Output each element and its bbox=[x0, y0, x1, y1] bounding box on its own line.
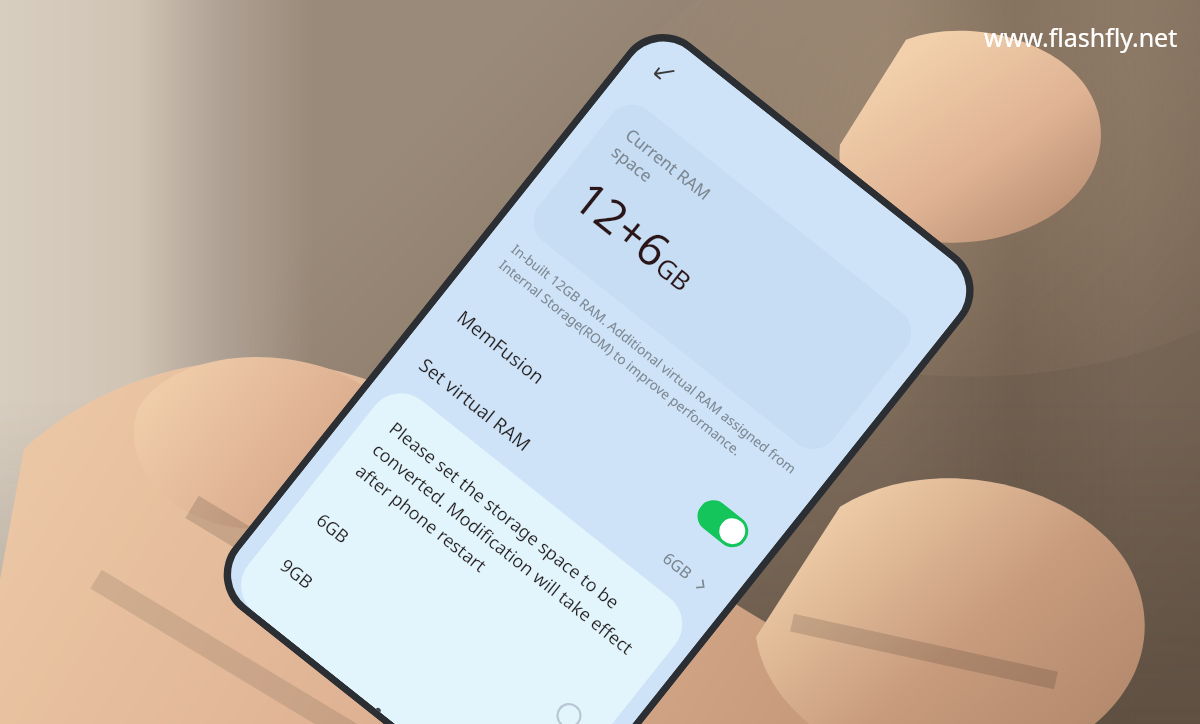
staticText: www.flashfly.net bbox=[984, 20, 1178, 54]
staticText: GB bbox=[649, 248, 699, 298]
staticText: 6GB bbox=[658, 547, 697, 584]
staticText: Current RAM space bbox=[607, 123, 716, 222]
button[interactable]: MemFusion toggle, on bbox=[691, 494, 755, 554]
button[interactable]: Back bbox=[634, 43, 695, 104]
button[interactable]: 12GB bbox=[264, 585, 525, 724]
staticText: 12+6 bbox=[562, 166, 684, 281]
staticText: Please set the storage space to be conve… bbox=[351, 416, 659, 684]
staticText: MemFusion bbox=[452, 304, 550, 390]
button[interactable]: 6GB bbox=[301, 494, 597, 724]
button[interactable]: Current RAM space bbox=[523, 94, 922, 459]
staticText: Set virtual RAM bbox=[414, 352, 536, 457]
button[interactable]: MemFusion bbox=[420, 274, 784, 582]
staticText: 9GB bbox=[275, 553, 319, 595]
button[interactable]: Set virtual RAM bbox=[383, 323, 746, 628]
staticText: In-built 12GB RAM. Additional virtual RA… bbox=[495, 240, 800, 493]
staticText: 6GB bbox=[311, 508, 355, 550]
button[interactable]: 9GB bbox=[265, 540, 561, 724]
